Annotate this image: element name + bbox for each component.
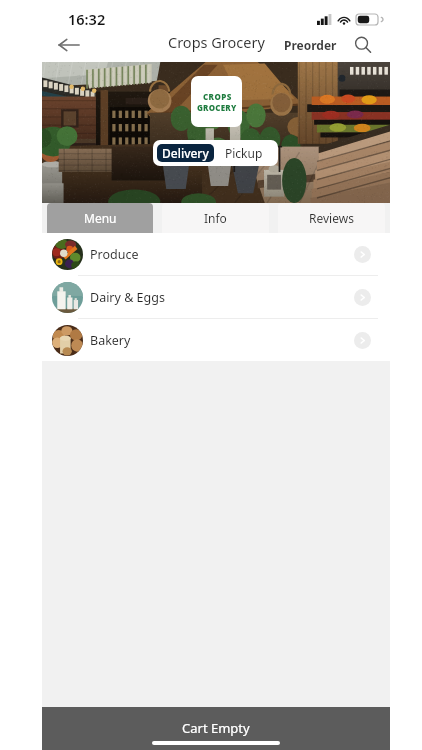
button[interactable]: Crops Grocery [168,32,265,52]
button[interactable]: Cart Empty [42,707,390,750]
button[interactable]: Preorder [284,37,337,53]
button[interactable]: Pickup [214,144,274,162]
staticText: 16:32 [68,9,106,29]
staticText: Cart Empty [182,719,250,737]
button[interactable]: Menu [47,203,153,233]
staticText: GROCERY [197,102,237,113]
button[interactable]: Produce [42,233,390,276]
button[interactable]: Info [162,203,269,233]
button[interactable]: Bakery [42,319,390,361]
staticText: Produce [90,246,139,263]
staticText: Info [204,210,227,226]
button[interactable]: Dairy & Eggs [42,276,390,319]
button[interactable]: Search [354,36,372,54]
staticText: Dairy & Eggs [90,289,165,306]
button[interactable]: Delivery [157,144,214,162]
staticText: Reviews [309,210,354,226]
staticText: Bakery [90,332,131,349]
staticText: Delivery [162,145,209,161]
staticText: Pickup [225,145,263,161]
staticText: Menu [84,210,117,226]
staticText: CROPS [203,91,232,102]
button[interactable]: Back [58,38,80,52]
button[interactable]: Reviews [278,203,385,233]
